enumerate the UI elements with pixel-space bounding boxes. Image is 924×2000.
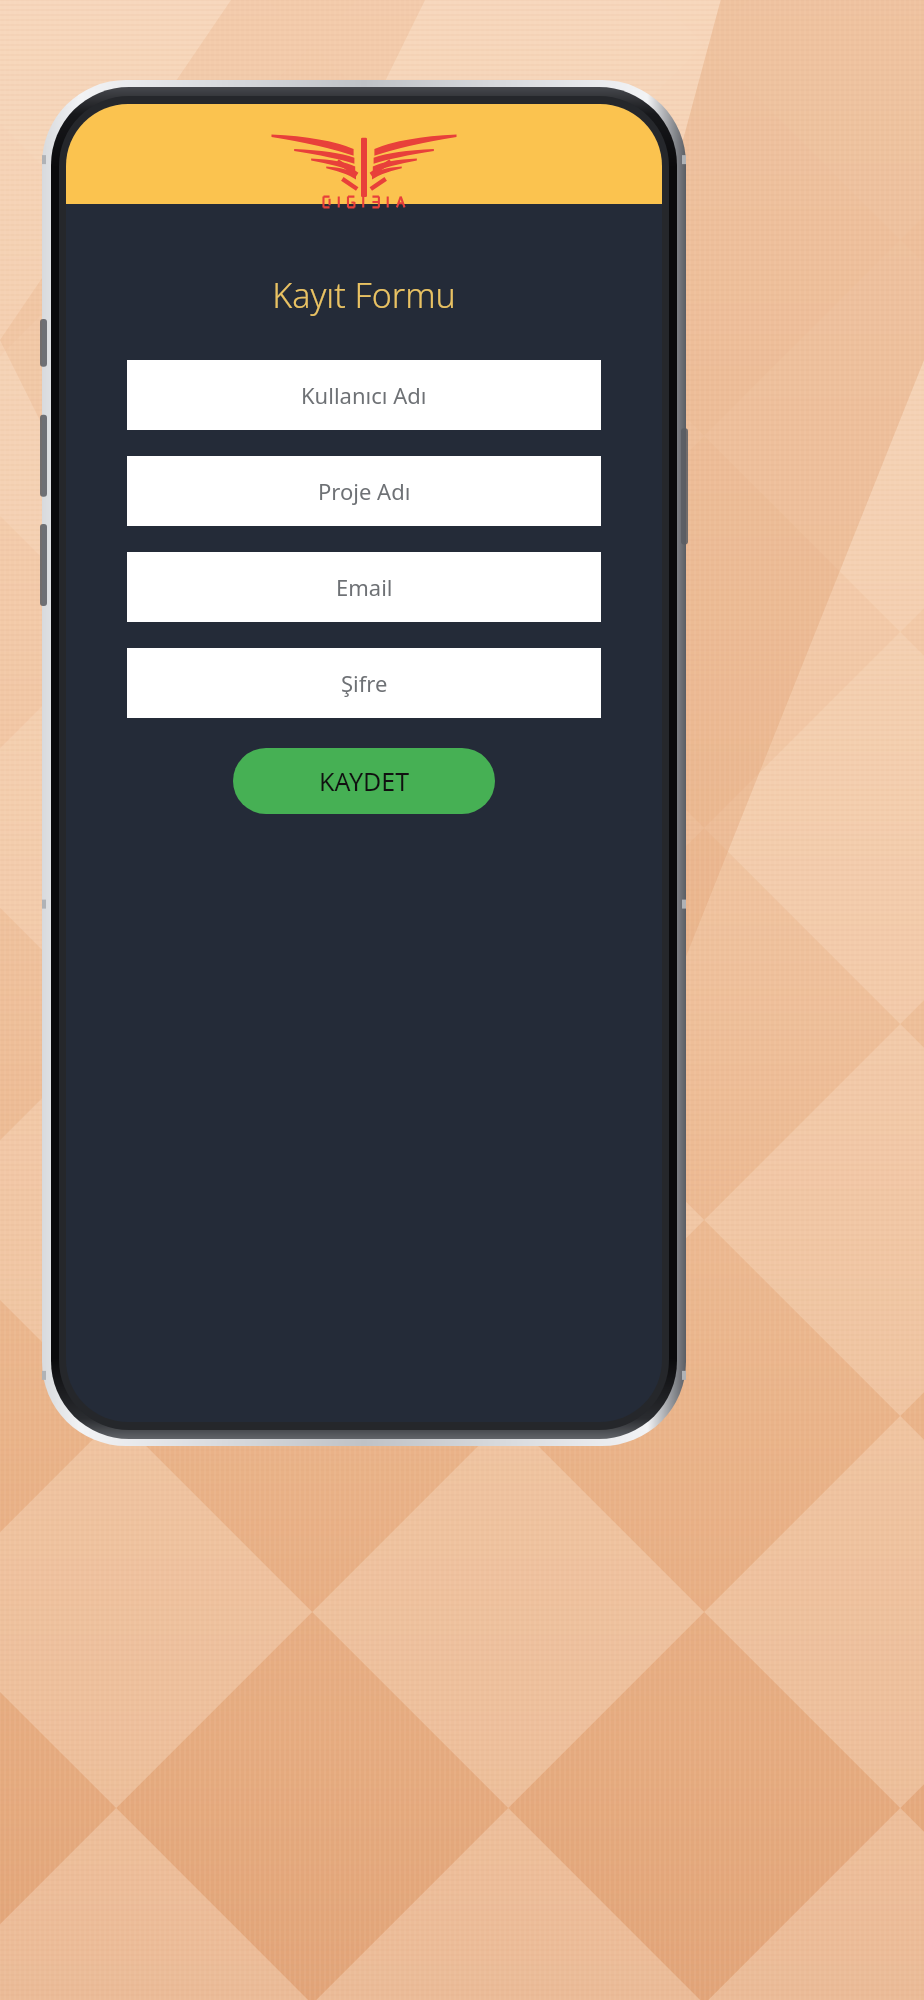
button[interactable]: KAYDET: [233, 748, 495, 814]
staticText: Kullanıcı Adı: [301, 380, 427, 410]
button[interactable]: Proje Adı: [127, 456, 601, 526]
button[interactable]: Kullanıcı Adı: [127, 360, 601, 430]
other: Digibia logo: [66, 117, 662, 197]
staticText: Kayıt Formu: [66, 272, 662, 318]
staticText: Şifre: [341, 668, 388, 698]
staticText: KAYDET: [319, 764, 410, 798]
staticText: Proje Adı: [318, 476, 411, 506]
staticText: Email: [336, 572, 393, 602]
button[interactable]: Email: [127, 552, 601, 622]
button[interactable]: Şifre: [127, 648, 601, 718]
